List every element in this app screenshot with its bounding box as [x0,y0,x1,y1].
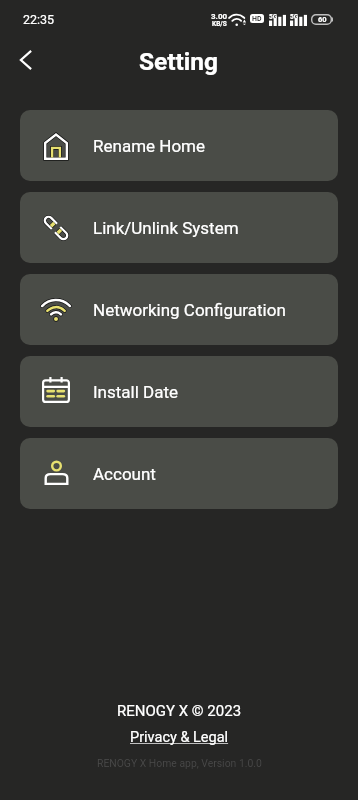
staticText: Privacy & Legal [130,729,229,746]
staticText: Rename Home [93,136,206,156]
staticText: 60 [318,15,327,24]
staticText: RENOGY X © 2023 [117,702,242,720]
button[interactable]: Networking Configuration [20,274,338,345]
button[interactable]: Privacy & Legal [130,729,229,746]
staticText: RENOGY X Home app, Version 1.0.0 [97,757,262,769]
staticText: Install Date [93,382,179,402]
staticText: Networking Configuration [93,300,286,320]
staticText: 3.00 [211,12,228,21]
staticText: 22:35 [23,12,55,27]
button[interactable]: Link/Unlink System [20,192,338,263]
button[interactable]: Rename Home [20,110,338,181]
button[interactable]: Account [20,438,338,509]
button[interactable]: Back [6,40,46,80]
staticText: Setting [139,47,219,76]
staticText: 5G [269,13,278,21]
staticText: KB/S [212,20,227,28]
staticText: 5G [290,13,299,21]
staticText: Account [93,464,156,484]
button[interactable]: Install Date [20,356,338,427]
staticText: HD [252,15,262,23]
staticText: Link/Unlink System [93,218,239,238]
